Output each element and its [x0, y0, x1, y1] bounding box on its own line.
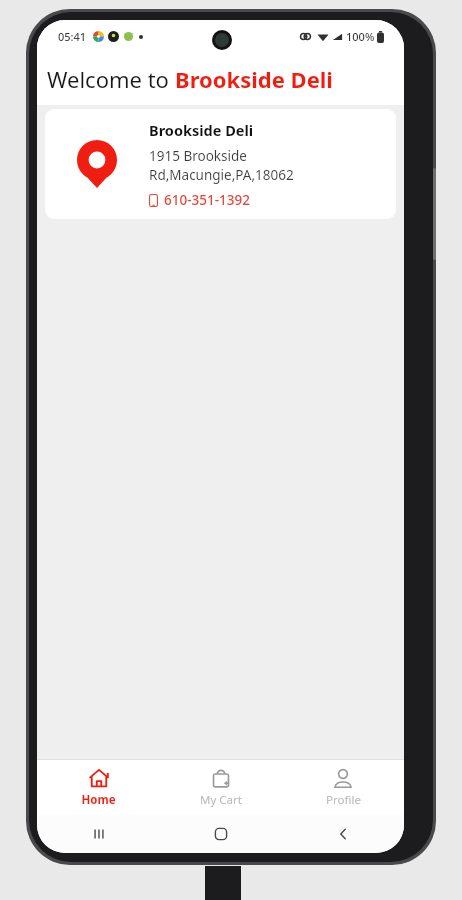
- staticText: Rd,Macungie,PA,18062: [149, 166, 294, 184]
- button[interactable]: Back: [282, 815, 404, 853]
- staticText: 1915 Brookside: [149, 147, 247, 165]
- button[interactable]: 610-351-1392: [149, 191, 250, 209]
- button[interactable]: Recent apps: [37, 815, 160, 853]
- button[interactable]: Profile: [282, 760, 404, 815]
- button[interactable]: Home: [37, 760, 160, 815]
- staticText: Brookside Deli: [149, 120, 254, 140]
- button[interactable]: Brookside Deli: [45, 109, 396, 219]
- staticText: Home: [81, 792, 116, 808]
- button[interactable]: My Cart: [160, 760, 282, 815]
- staticText: Welcome to: [47, 64, 175, 94]
- button[interactable]: Home: [160, 815, 282, 853]
- staticText: 610-351-1392: [164, 191, 250, 209]
- staticText: 100%: [346, 29, 375, 44]
- staticText: Profile: [326, 792, 361, 808]
- staticText: 05:41: [58, 29, 87, 44]
- staticText: Brookside Deli: [175, 64, 333, 94]
- staticText: My Cart: [200, 792, 242, 808]
